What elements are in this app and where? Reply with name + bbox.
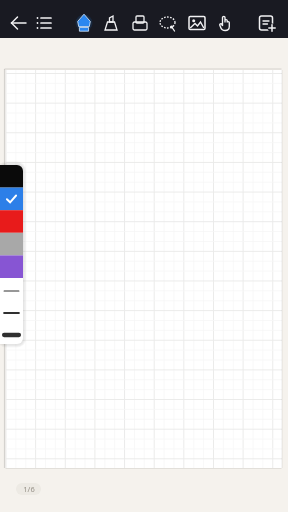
button[interactable]: Page 1 of 6 [16, 483, 41, 495]
button[interactable]: Stroke width 3 [0, 324, 23, 346]
button[interactable]: New page [254, 10, 280, 36]
button[interactable]: Highlighter [98, 10, 124, 36]
button[interactable]: Red [0, 210, 23, 233]
button[interactable]: Pan [212, 10, 238, 36]
staticText: 1/6 [23, 484, 35, 494]
button[interactable]: Back [6, 10, 32, 36]
button[interactable]: Black [0, 165, 23, 188]
button[interactable]: Eraser [127, 10, 153, 36]
button[interactable]: Blue [0, 188, 23, 211]
button[interactable]: Stroke width 1 [0, 280, 23, 302]
button[interactable]: Insert image [184, 10, 210, 36]
button[interactable]: Purple [0, 255, 23, 278]
button[interactable]: Grey [0, 233, 23, 256]
button[interactable]: Pen [71, 10, 97, 36]
button[interactable]: Stroke width 2 [0, 302, 23, 324]
button[interactable]: Lasso select [155, 10, 181, 36]
button[interactable]: Menu [31, 10, 57, 36]
